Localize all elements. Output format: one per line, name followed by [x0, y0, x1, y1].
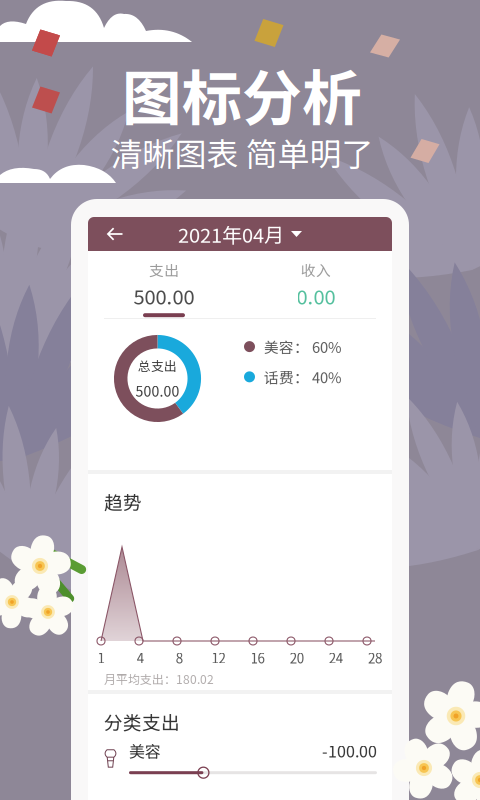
- staticText: 0.00: [296, 281, 335, 310]
- staticText: 500.00: [135, 380, 179, 401]
- staticText: 12: [211, 648, 225, 667]
- staticText: 趋势: [104, 488, 142, 515]
- button[interactable]: Back: [88, 217, 138, 251]
- button[interactable]: 美容: [88, 732, 392, 785]
- staticText: 清晰图表 简单明了: [110, 129, 373, 175]
- staticText: 8: [176, 648, 183, 667]
- staticText: 28: [368, 648, 382, 667]
- staticText: 4: [137, 648, 144, 667]
- staticText: 美容: [129, 739, 161, 762]
- staticText: 20: [290, 648, 304, 667]
- staticText: 40%: [312, 366, 342, 387]
- staticText: 月平均支出：180.02: [104, 670, 214, 687]
- staticText: 支出: [149, 259, 179, 280]
- staticText: 16: [251, 648, 265, 667]
- staticText: 24: [329, 648, 343, 667]
- staticText: 60%: [312, 336, 342, 357]
- button[interactable]: 2021年04月: [172, 212, 308, 255]
- staticText: 500.00: [133, 281, 194, 310]
- staticText: 分类支出: [104, 708, 180, 735]
- staticText: 话费：: [264, 366, 309, 387]
- staticText: 美容：: [264, 336, 309, 357]
- staticText: 总支出: [138, 356, 177, 374]
- staticText: 1: [97, 648, 104, 667]
- staticText: 2021年04月: [178, 219, 284, 248]
- staticText: -100.00: [322, 739, 377, 762]
- staticText: 图标分析: [122, 51, 362, 137]
- staticText: 收入: [301, 259, 331, 280]
